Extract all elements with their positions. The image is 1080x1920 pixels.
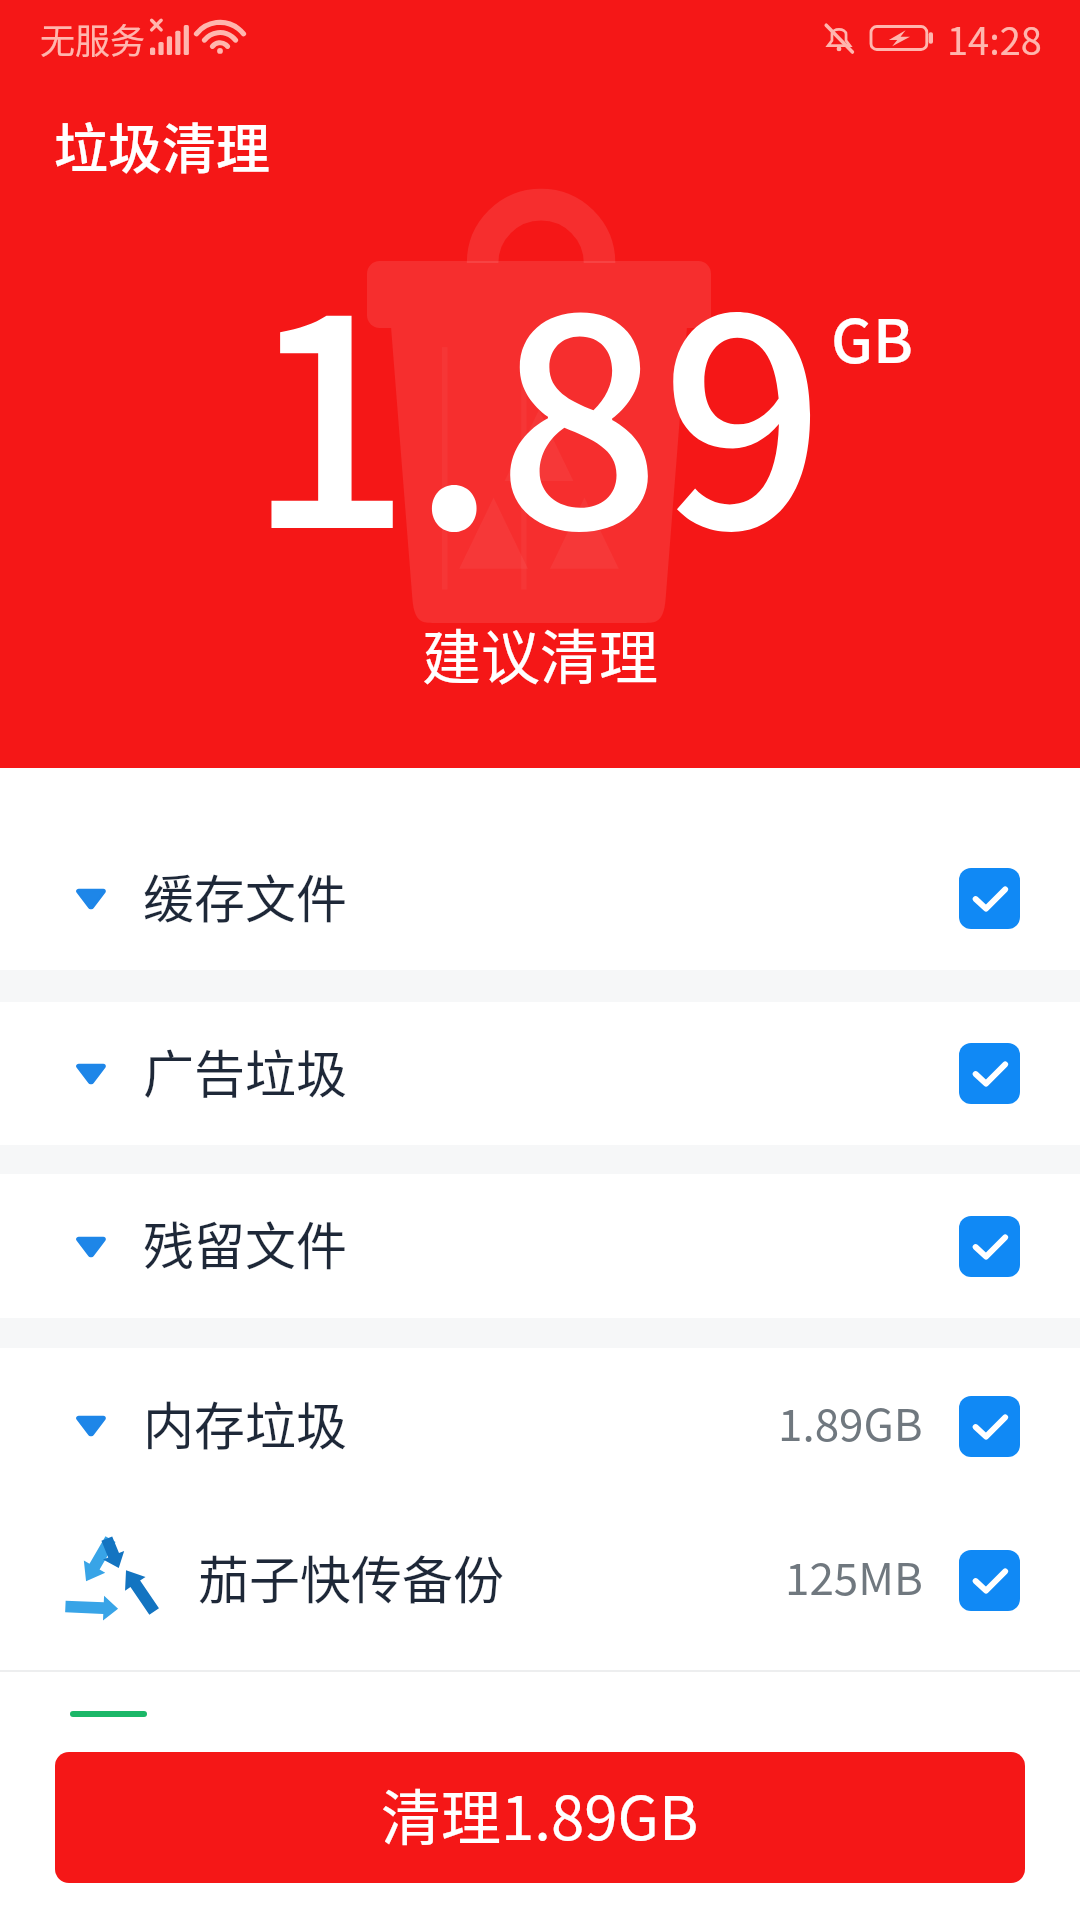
staticText: 1.89GB [778, 1390, 923, 1454]
staticText: 清理1.89GB [381, 1770, 699, 1857]
staticText: 广告垃圾 [143, 1034, 348, 1108]
button[interactable]: Toggle selection [959, 1043, 1020, 1104]
button[interactable]: 茄子快传备份 [0, 1503, 1080, 1656]
button[interactable]: Toggle selection [959, 1550, 1020, 1611]
staticText: 无服务 [40, 13, 146, 64]
staticText: 内存垃圾 [143, 1386, 348, 1460]
button[interactable]: Toggle selection [959, 1396, 1020, 1457]
staticText: 14:28 [947, 11, 1042, 66]
button[interactable]: 广告垃圾 [0, 1002, 1080, 1145]
button[interactable]: 缓存文件 [0, 827, 1080, 970]
staticText: 缓存文件 [143, 859, 348, 933]
staticText: 125MB [785, 1544, 923, 1608]
staticText: 1.89 [247, 194, 826, 611]
staticText: 茄子快传备份 [198, 1540, 505, 1614]
staticText: 残留文件 [143, 1206, 348, 1280]
button[interactable]: 内存垃圾 [0, 1348, 1080, 1503]
staticText: 垃圾清理 [54, 106, 270, 184]
staticText: GB [831, 293, 914, 380]
button[interactable]: 残留文件 [0, 1174, 1080, 1318]
button[interactable]: Toggle selection [959, 1216, 1020, 1277]
staticText: 建议清理 [0, 611, 1080, 696]
button[interactable]: 清理1.89GB [55, 1752, 1025, 1883]
button[interactable]: Toggle selection [959, 868, 1020, 929]
